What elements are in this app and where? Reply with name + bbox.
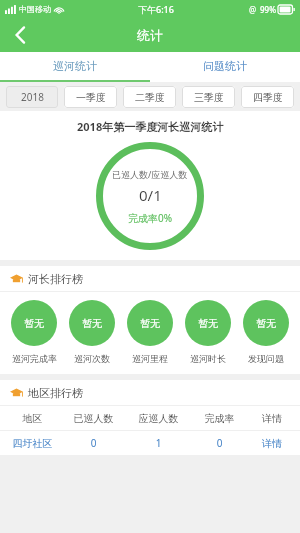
staticText: 下午6:16 xyxy=(138,3,174,15)
button[interactable]: Back xyxy=(0,18,40,52)
staticText: 四季度 xyxy=(253,91,283,104)
staticText: 完成率0% xyxy=(128,211,173,225)
staticText: 暂无 xyxy=(82,317,102,330)
staticText: 已巡人数 xyxy=(61,412,126,425)
staticText: 问题统计 xyxy=(203,59,247,73)
staticText: 巡河时长 xyxy=(190,353,226,364)
button[interactable]: 2018 xyxy=(6,86,58,108)
staticText: 完成率 xyxy=(191,412,248,425)
staticText: 巡河次数 xyxy=(74,353,110,364)
staticText: 地区排行榜 xyxy=(28,386,83,400)
staticText: 统计 xyxy=(137,27,163,43)
button[interactable]: 二季度 xyxy=(123,86,176,108)
staticText: 一季度 xyxy=(76,91,106,104)
staticText: 暂无 xyxy=(24,317,44,330)
staticText: 0 xyxy=(61,436,126,450)
button[interactable]: 暂无 xyxy=(179,300,237,364)
staticText: 地区 xyxy=(4,412,61,425)
button[interactable]: 一季度 xyxy=(64,86,117,108)
button[interactable]: 巡河统计 xyxy=(0,52,150,80)
staticText: 99% xyxy=(260,4,276,15)
staticText: @ xyxy=(249,4,257,15)
staticText: 巡河统计 xyxy=(53,59,97,73)
button[interactable]: 三季度 xyxy=(182,86,235,108)
staticText: 二季度 xyxy=(135,91,165,104)
staticText: 1 xyxy=(126,436,191,450)
staticText: 详情 xyxy=(248,412,296,425)
button[interactable]: 问题统计 xyxy=(150,52,300,80)
staticText: 2018年第一季度河长巡河统计 xyxy=(77,119,224,134)
staticText: 应巡人数 xyxy=(126,412,191,425)
staticText: 暂无 xyxy=(256,317,276,330)
staticText: 0 xyxy=(191,436,248,450)
button[interactable]: 暂无 xyxy=(5,300,63,364)
staticText: 中国移动 xyxy=(19,4,51,14)
staticText: 详情 xyxy=(248,437,296,450)
staticText: 四圩社区 xyxy=(4,437,61,450)
staticText: 0/1 xyxy=(139,185,162,205)
staticText: 三季度 xyxy=(194,91,224,104)
staticText: 巡河完成率 xyxy=(12,353,57,364)
staticText: 河长排行榜 xyxy=(28,272,83,286)
button[interactable]: 四季度 xyxy=(241,86,294,108)
staticText: 暂无 xyxy=(140,317,160,330)
button[interactable]: 暂无 xyxy=(237,300,295,364)
button[interactable]: 四圩社区 xyxy=(4,431,296,455)
staticText: 发现问题 xyxy=(248,353,284,364)
staticText: 2018 xyxy=(21,90,44,104)
staticText: 巡河里程 xyxy=(132,353,168,364)
button[interactable]: 暂无 xyxy=(63,300,121,364)
staticText: 已巡人数/应巡人数 xyxy=(112,168,188,180)
staticText: 暂无 xyxy=(198,317,218,330)
button[interactable]: 暂无 xyxy=(121,300,179,364)
